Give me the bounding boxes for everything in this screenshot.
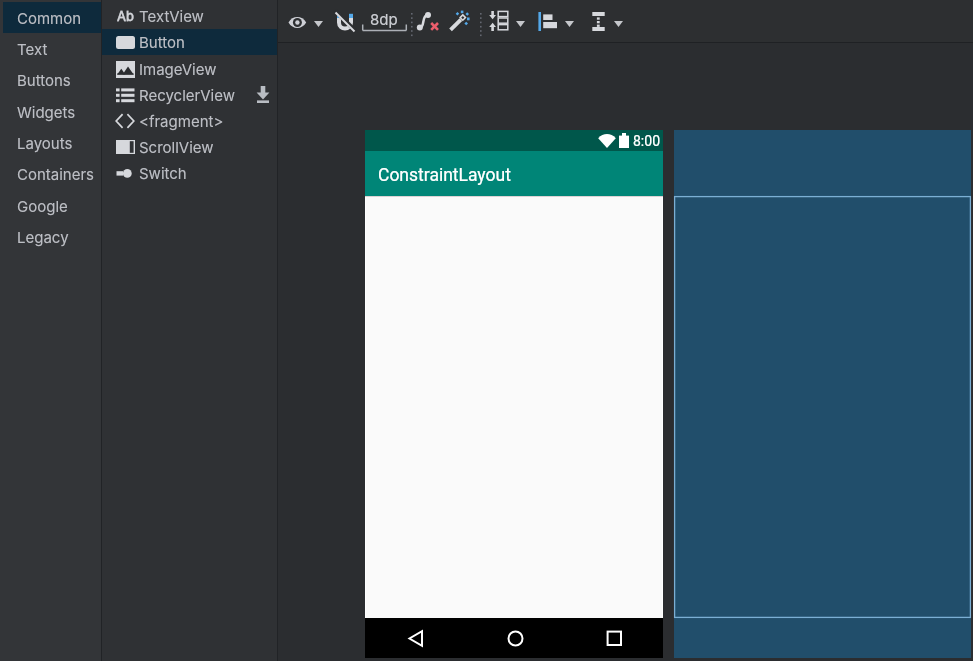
button[interactable]: Recents — [606, 630, 623, 647]
button[interactable] — [310, 15, 327, 33]
button[interactable]: Back — [408, 630, 425, 647]
button[interactable]: Text — [3, 33, 101, 64]
staticText: Button — [139, 33, 185, 51]
button[interactable]: 8dp — [362, 6, 407, 36]
button[interactable]: Download RecyclerView — [251, 82, 275, 106]
button[interactable]: Show constraints — [283, 10, 311, 34]
staticText: ImageView — [139, 60, 217, 78]
staticText: Switch — [139, 164, 187, 182]
button[interactable]: RecyclerView — [102, 82, 277, 108]
button[interactable]: Home — [507, 630, 524, 647]
staticText: 8dp — [370, 10, 398, 28]
button[interactable]: Clear all constraints — [417, 11, 443, 31]
button[interactable]: Pack — [486, 11, 510, 31]
button[interactable]: Buttons — [3, 64, 101, 95]
staticText: 8:00 — [633, 133, 660, 149]
staticText: Containers — [17, 165, 95, 183]
button[interactable]: Button — [102, 29, 277, 55]
button[interactable] — [610, 15, 627, 33]
button[interactable]: Guidelines — [588, 11, 608, 31]
staticText: Google — [17, 197, 68, 215]
button[interactable]: Ab — [102, 3, 277, 29]
staticText: Ab — [117, 8, 134, 24]
button[interactable]: Switch — [102, 160, 277, 186]
button[interactable]: Toggle autoconnect — [333, 10, 357, 34]
button[interactable]: Common — [3, 2, 101, 33]
staticText: Layouts — [17, 134, 73, 152]
button[interactable]: <fragment> — [102, 108, 277, 134]
staticText: Text — [17, 40, 48, 58]
staticText: ConstraintLayout — [378, 165, 511, 186]
button[interactable]: ImageView — [102, 56, 277, 82]
button[interactable]: Containers — [3, 158, 101, 189]
button[interactable] — [561, 15, 578, 33]
staticText: Widgets — [17, 103, 76, 121]
button[interactable]: ScrollView — [102, 134, 277, 160]
button[interactable]: Infer constraints — [449, 11, 471, 31]
button[interactable]: Align — [536, 11, 560, 31]
staticText: ScrollView — [139, 138, 214, 156]
staticText: TextView — [139, 7, 204, 25]
staticText: Buttons — [17, 71, 71, 89]
button[interactable]: Layouts — [3, 127, 101, 158]
button[interactable]: Widgets — [3, 96, 101, 127]
staticText: <fragment> — [139, 112, 224, 130]
staticText: Legacy — [17, 228, 69, 246]
staticText: Common — [17, 9, 82, 27]
button[interactable]: Google — [3, 190, 101, 221]
button[interactable] — [512, 15, 529, 33]
staticText: RecyclerView — [139, 86, 235, 104]
button[interactable]: Legacy — [3, 221, 101, 252]
